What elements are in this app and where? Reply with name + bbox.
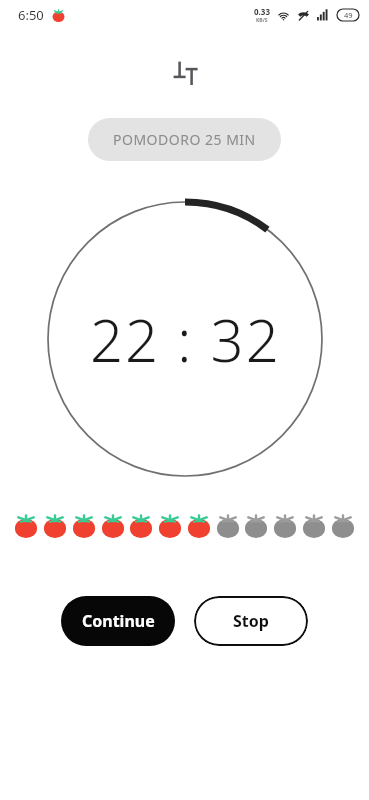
staticText: Continue [82,610,155,632]
staticText: 22 : 32 [90,300,281,379]
button[interactable]: Settings [162,50,208,96]
staticText: KB/S [256,17,268,24]
button[interactable]: POMODORO 25 MIN [88,118,281,161]
staticText: POMODORO 25 MIN [113,130,256,149]
staticText: 6:50 [18,6,44,24]
button[interactable]: Continue [61,596,175,646]
button[interactable]: Stop [194,596,308,646]
staticText: 49 [344,10,353,20]
staticText: 0.33 [254,6,270,17]
staticText: Stop [233,610,269,632]
